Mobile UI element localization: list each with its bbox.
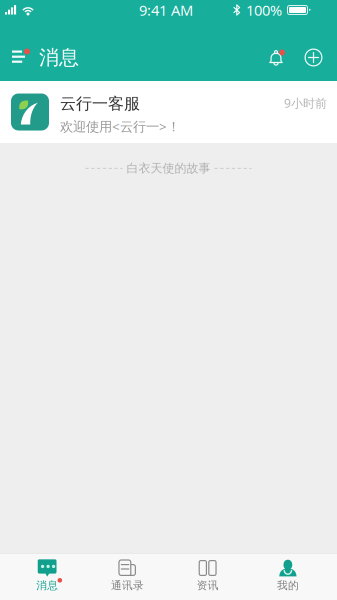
button[interactable]: 资讯: [167, 553, 248, 600]
staticText: 消息: [36, 579, 58, 592]
button[interactable]: 云行一客服: [0, 81, 337, 143]
button[interactable]: Menu: [7, 40, 35, 74]
staticText: 9小时前: [284, 95, 327, 111]
button[interactable]: 我的: [248, 553, 328, 600]
button[interactable]: 通讯录: [87, 553, 167, 600]
staticText: 我的: [277, 579, 299, 592]
staticText: 9:41 AM: [139, 0, 193, 20]
staticText: 资讯: [197, 579, 219, 592]
staticText: 100%: [246, 0, 282, 20]
button[interactable]: Notifications: [261, 41, 293, 73]
button[interactable]: 消息: [7, 553, 87, 600]
staticText: 白衣天使的故事: [126, 161, 210, 176]
staticText: 欢迎使用<云行一>！: [60, 117, 180, 135]
staticText: 消息: [39, 45, 79, 70]
staticText: 云行一客服: [60, 94, 140, 113]
staticText: 通讯录: [111, 579, 144, 592]
button[interactable]: Add: [296, 40, 331, 75]
